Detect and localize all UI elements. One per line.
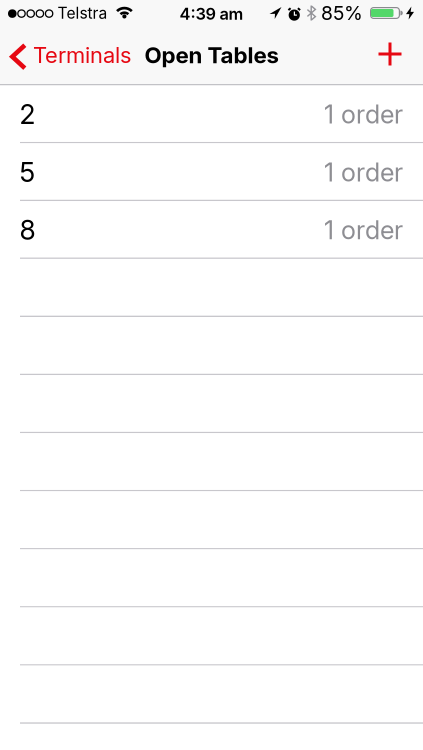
staticText: 8 — [19, 214, 35, 246]
staticText: 4:39 am — [179, 4, 243, 24]
staticText: Telstra — [57, 4, 107, 22]
button[interactable]: 2 — [0, 85, 423, 143]
staticText: 5 — [19, 156, 35, 188]
button[interactable]: Terminals — [0, 41, 131, 68]
staticText: 85% — [321, 1, 363, 25]
button[interactable]: Add — [378, 43, 423, 67]
staticText: 1 order — [324, 215, 403, 245]
staticText: 2 — [19, 98, 35, 131]
button[interactable]: 8 — [0, 201, 423, 259]
staticText: Open Tables — [144, 41, 278, 68]
staticText: 1 order — [324, 157, 403, 188]
button[interactable]: 5 — [0, 143, 423, 201]
staticText: 1 order — [324, 99, 403, 130]
staticText: Terminals — [33, 42, 131, 68]
